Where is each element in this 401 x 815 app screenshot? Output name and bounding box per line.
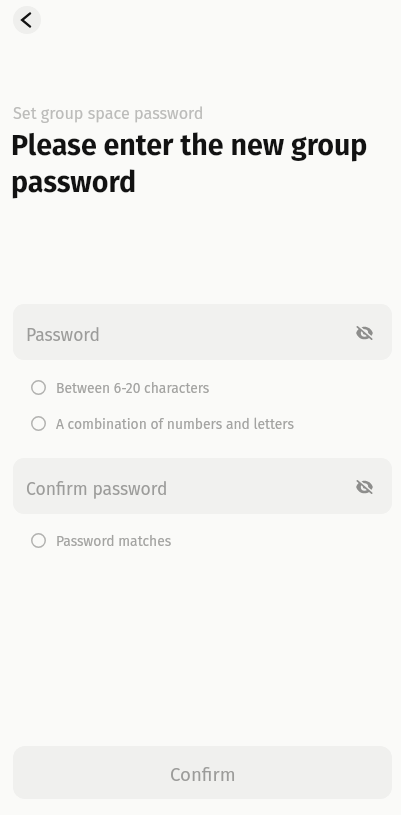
button[interactable]: Show password [351,474,377,500]
staticText: Please enter the new group password [11,128,389,200]
button[interactable]: Password [13,304,392,360]
staticText: Confirm password [26,479,168,500]
staticText: A combination of numbers and letters [56,416,294,433]
button[interactable]: Back [13,6,41,34]
button[interactable]: Confirm password [13,458,392,514]
staticText: Password [26,325,101,346]
staticText: Confirm [170,764,236,786]
button[interactable]: Show password [351,320,377,346]
button[interactable]: Confirm [13,746,392,799]
staticText: Between 6-20 characters [56,380,210,397]
staticText: Password matches [56,533,172,550]
staticText: Set group space password [13,104,204,123]
